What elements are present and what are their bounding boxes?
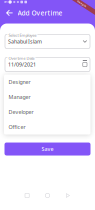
staticText: 11/09/2021 bbox=[8, 61, 36, 68]
button[interactable]: Home bbox=[42, 190, 53, 201]
staticText: Manager bbox=[8, 93, 30, 101]
button[interactable]: Back bbox=[4, 7, 15, 18]
button[interactable]: Designer bbox=[4, 74, 90, 89]
staticText: Overtime Date bbox=[8, 55, 34, 61]
staticText: Sahabul Islam bbox=[8, 38, 42, 45]
staticText: Officer bbox=[8, 123, 25, 131]
button[interactable]: Manager bbox=[4, 89, 90, 104]
staticText: Select Employee bbox=[8, 32, 36, 38]
button[interactable]: Recent apps bbox=[22, 190, 32, 201]
staticText: Add Overtime bbox=[17, 9, 62, 17]
staticText: freepik bbox=[76, 2, 87, 5]
button[interactable]: Officer bbox=[4, 119, 90, 134]
button[interactable]: Developer bbox=[4, 104, 90, 119]
button[interactable]: Save bbox=[4, 142, 90, 155]
staticText: Designer bbox=[8, 78, 30, 86]
staticText: Developer bbox=[8, 108, 33, 116]
staticText: am bbox=[4, 0, 7, 4]
button[interactable]: Back bbox=[63, 190, 73, 201]
staticText: Save bbox=[41, 145, 53, 153]
